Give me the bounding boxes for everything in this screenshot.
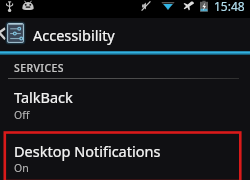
button[interactable]: Navigate up xyxy=(0,21,7,44)
button[interactable]: TalkBack xyxy=(0,80,250,125)
staticText: SERVICES xyxy=(14,61,64,75)
staticText: On xyxy=(14,161,29,175)
staticText: Desktop Notifications xyxy=(14,141,161,161)
staticText: Off xyxy=(14,108,30,122)
staticText: Accessibility xyxy=(33,25,115,45)
staticText: TalkBack xyxy=(14,87,73,107)
staticText: 15:48 xyxy=(214,0,245,14)
button[interactable]: Desktop Notifications xyxy=(0,134,250,180)
